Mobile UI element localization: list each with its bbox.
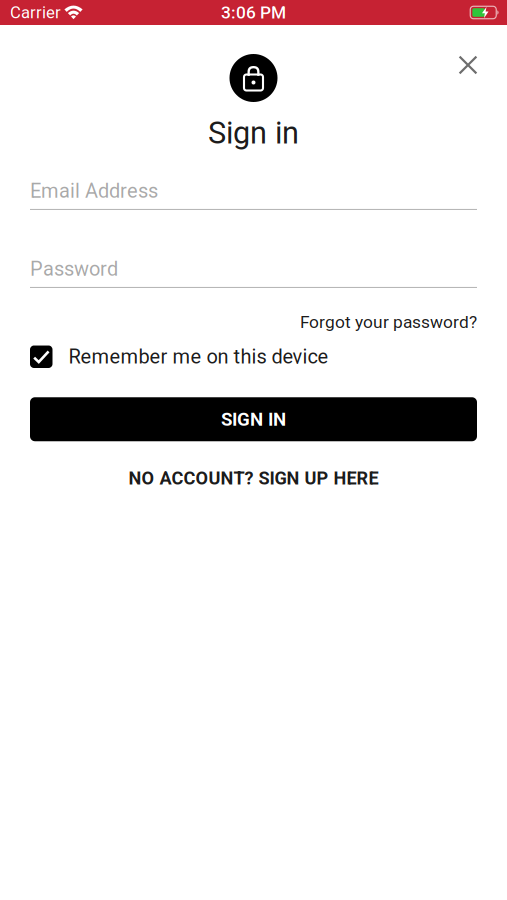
staticText: NO ACCOUNT? SIGN UP HERE xyxy=(128,468,378,489)
staticText: Forgot your password? xyxy=(300,312,477,332)
button[interactable]: Remember me on this device xyxy=(30,345,477,368)
staticText: 3:06 PM xyxy=(221,2,286,23)
staticText: Carrier xyxy=(10,3,61,22)
staticText: SIGN IN xyxy=(221,408,286,430)
staticText: Password xyxy=(30,257,118,281)
staticText: Remember me on this device xyxy=(68,345,328,368)
button[interactable]: Forgot your password? xyxy=(300,312,477,332)
staticText: Email Address xyxy=(30,179,158,203)
button[interactable]: NO ACCOUNT? SIGN UP HERE xyxy=(30,468,477,488)
staticText: Sign in xyxy=(208,115,299,151)
button[interactable]: SIGN IN xyxy=(30,397,477,441)
button[interactable]: Close xyxy=(446,43,490,87)
